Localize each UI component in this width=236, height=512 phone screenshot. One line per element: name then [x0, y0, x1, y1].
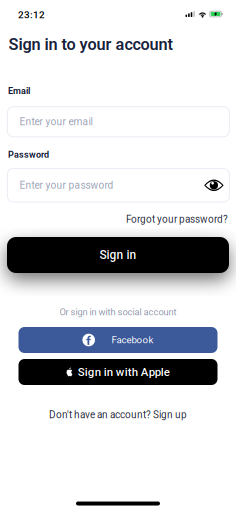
staticText: Sign in to your account	[8, 35, 172, 54]
button[interactable]: Sign in with Apple	[18, 359, 217, 385]
staticText: Enter your email	[19, 116, 92, 128]
staticText: Email	[8, 86, 30, 96]
button[interactable]: Sign in	[7, 237, 229, 273]
staticText: Or sign in with social account	[59, 306, 176, 317]
button[interactable]: Forgot your password?	[124, 212, 230, 226]
staticText: Password	[8, 149, 49, 160]
staticText: Forgot your password?	[126, 213, 228, 225]
staticText: Enter your password	[19, 179, 113, 191]
button[interactable]: Facebook	[18, 327, 217, 353]
staticText: Sign in with Apple	[78, 365, 170, 379]
button[interactable]: Show password	[201, 172, 227, 198]
button[interactable]: Don't have an account? Sign up	[0, 407, 236, 423]
staticText: Sign in	[99, 248, 136, 262]
staticText: 23:12	[18, 9, 45, 21]
staticText: Don't have an account? Sign up	[49, 409, 187, 421]
staticText: Facebook	[112, 334, 154, 346]
